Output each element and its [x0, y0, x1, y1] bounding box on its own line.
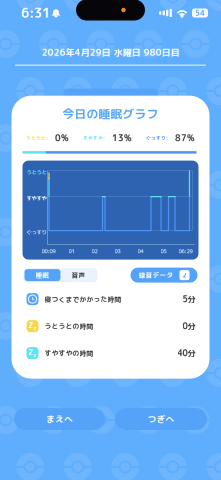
staticText: 睡眠: [35, 270, 49, 280]
staticText: 寝つくまでかかった時間: [44, 294, 121, 304]
staticText: Z: [28, 346, 33, 358]
staticText: すやすやの時間: [44, 348, 93, 358]
staticText: まえへ: [46, 413, 73, 425]
staticText: 6:31: [21, 4, 50, 22]
staticText: 02: [91, 248, 97, 255]
staticText: 40分: [177, 347, 195, 359]
staticText: 0%: [55, 132, 69, 144]
staticText: 今日の睡眠グラフ: [62, 106, 158, 122]
staticText: ぐっすり:: [146, 135, 168, 141]
staticText: 01: [68, 248, 74, 255]
button[interactable]: つぎへ: [115, 408, 207, 430]
staticText: 87%: [175, 132, 195, 144]
staticText: Z: [28, 319, 33, 331]
staticText: うとうと:: [26, 135, 48, 141]
staticText: つぎへ: [147, 413, 174, 425]
staticText: すやすや: [26, 195, 46, 202]
button[interactable]: 寝つくまでかかった時間: [11, 286, 209, 313]
staticText: 2026年4月29日 水曜日 980日目: [41, 46, 179, 59]
staticText: 05: [160, 248, 166, 255]
staticText: 録音データ: [138, 270, 173, 280]
staticText: 13%: [112, 132, 132, 144]
staticText: z: [33, 351, 36, 359]
button[interactable]: Z: [11, 313, 209, 340]
staticText: z: [33, 324, 36, 332]
button[interactable]: まえへ: [14, 408, 105, 430]
button[interactable]: 録音データ: [130, 268, 197, 283]
staticText: うとうとの時間: [44, 321, 93, 331]
staticText: すやすや:: [83, 135, 105, 141]
staticText: うとうと: [26, 169, 46, 176]
button[interactable]: 睡眠: [24, 269, 60, 281]
staticText: 06:29: [178, 248, 192, 255]
staticText: 音声: [71, 270, 85, 280]
staticText: 5分: [182, 293, 195, 305]
button[interactable]: 音声: [60, 269, 96, 281]
staticText: 03: [114, 248, 120, 255]
staticText: ぐっすり: [26, 229, 46, 236]
staticText: 04: [137, 248, 143, 255]
staticText: 0分: [182, 320, 195, 332]
staticText: 2: [182, 270, 186, 280]
button[interactable]: Z: [11, 340, 209, 367]
staticText: 54: [195, 8, 205, 18]
staticText: 00:09: [41, 248, 55, 255]
